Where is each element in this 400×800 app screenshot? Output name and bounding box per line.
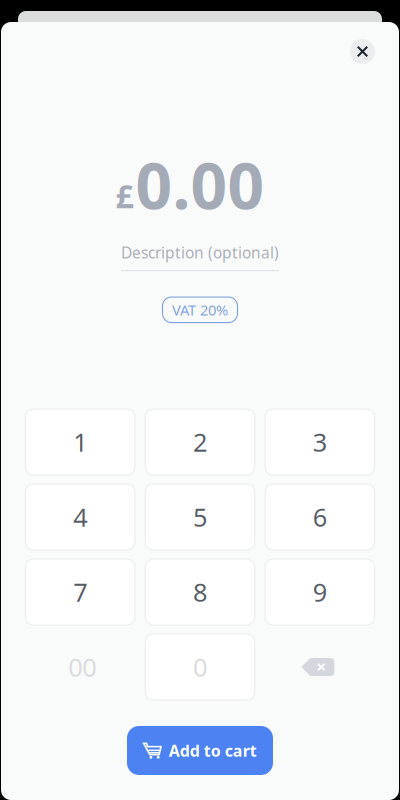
button[interactable]: 5	[145, 484, 255, 550]
button[interactable]: Add to cart	[127, 726, 273, 775]
staticText: 0	[193, 650, 207, 684]
staticText: 1	[73, 425, 87, 459]
button[interactable]: 00	[25, 634, 135, 700]
staticText: 3	[313, 425, 327, 459]
staticText: 9	[313, 575, 327, 609]
button[interactable]: 0	[145, 634, 255, 700]
staticText: 6	[313, 500, 327, 534]
button[interactable]: VAT 20%	[162, 297, 237, 323]
staticText: 0.00	[135, 142, 264, 227]
button[interactable]: 9	[265, 559, 374, 625]
staticText: 4	[73, 500, 87, 534]
staticText: Add to cart	[169, 740, 257, 761]
button[interactable]: 6	[265, 484, 374, 550]
button[interactable]: 8	[145, 559, 255, 625]
button[interactable]: Delete	[265, 634, 374, 700]
staticText: VAT 20%	[172, 300, 228, 320]
staticText: 00	[68, 650, 96, 684]
staticText: 7	[73, 575, 87, 609]
button[interactable]: 3	[265, 409, 374, 475]
button[interactable]: 2	[145, 409, 255, 475]
button[interactable]: Close	[350, 39, 375, 64]
staticText: 8	[193, 575, 207, 609]
staticText: 5	[193, 500, 207, 534]
staticText: Description (optional)	[121, 242, 279, 263]
staticText: 2	[193, 425, 207, 459]
staticText: £	[115, 174, 133, 217]
button[interactable]: 4	[25, 484, 135, 550]
button[interactable]: 1	[25, 409, 135, 475]
button[interactable]: 7	[25, 559, 135, 625]
